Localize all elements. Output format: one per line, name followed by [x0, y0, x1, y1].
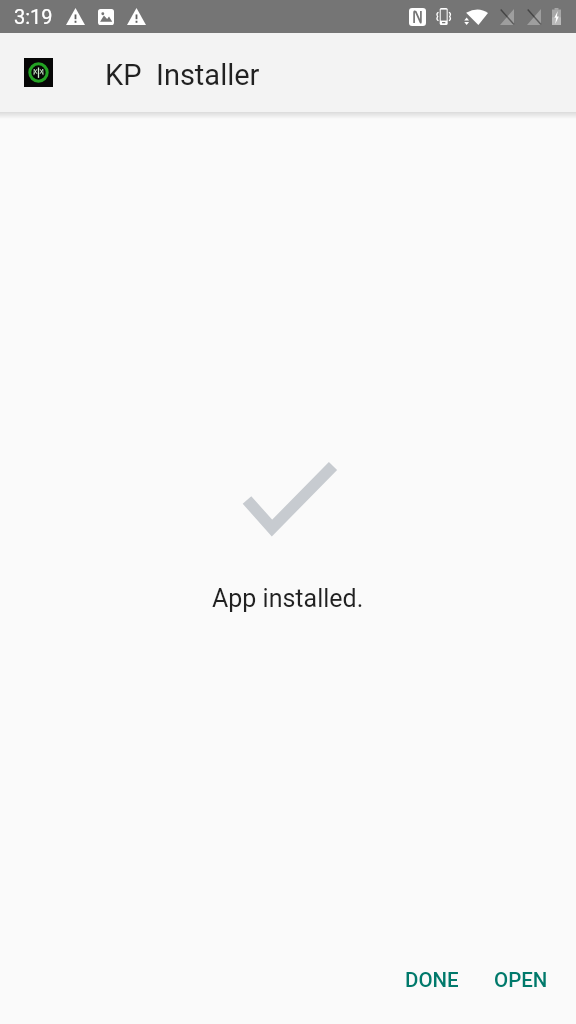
staticText: DONE: [405, 968, 459, 992]
button[interactable]: DONE: [395, 955, 469, 1005]
staticText: 3:19: [14, 5, 53, 28]
staticText: OPEN: [494, 968, 548, 992]
staticText: Installer: [156, 58, 260, 92]
other: KP Installer app icon: [24, 58, 53, 87]
staticText: KP: [105, 58, 142, 92]
button[interactable]: OPEN: [484, 955, 558, 1005]
staticText: App installed.: [212, 584, 364, 613]
